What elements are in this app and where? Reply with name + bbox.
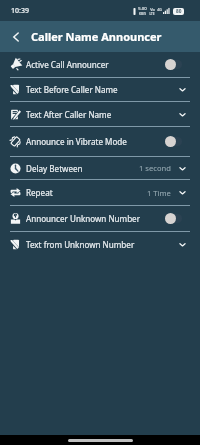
staticText: Text Before Caller Name — [26, 84, 118, 95]
staticText: Announcer Unknown Number — [26, 213, 141, 224]
staticText: Delay Between — [26, 163, 83, 174]
staticText: Repeat — [26, 187, 53, 198]
staticText: 1 Time — [147, 188, 171, 198]
button[interactable]: Announce in Vibrate Mode — [0, 127, 200, 156]
button[interactable]: Toggle — [165, 136, 186, 147]
staticText: Caller Name Announcer — [31, 29, 162, 44]
staticText: Announce in Vibrate Mode — [26, 136, 127, 147]
staticText: 1 second — [139, 163, 171, 173]
button[interactable]: Delay Between — [0, 157, 200, 179]
staticText: Vo — [150, 7, 155, 12]
staticText: 80 — [176, 8, 182, 15]
button[interactable]: Back — [0, 21, 31, 52]
staticText: Text After Caller Name — [26, 109, 112, 120]
staticText: Active Call Announcer — [26, 59, 109, 70]
staticText: LTE — [149, 12, 155, 16]
staticText: 10:39 — [11, 6, 29, 16]
staticText: 5.00 — [138, 6, 147, 12]
button[interactable]: Toggle — [165, 213, 186, 224]
button[interactable]: Text After Caller Name — [0, 102, 200, 126]
button[interactable]: Text Before Caller Name — [0, 78, 200, 101]
staticText: Text from Unknown Number — [26, 239, 135, 250]
button[interactable]: Announcer Unknown Number — [0, 206, 200, 231]
button[interactable]: Repeat — [0, 180, 200, 205]
staticText: KB/S — [139, 12, 146, 16]
button[interactable]: Text from Unknown Number — [0, 232, 200, 257]
button[interactable]: Active Call Announcer — [0, 52, 200, 77]
staticText: 4G — [157, 7, 162, 12]
button[interactable]: Toggle — [165, 59, 186, 70]
